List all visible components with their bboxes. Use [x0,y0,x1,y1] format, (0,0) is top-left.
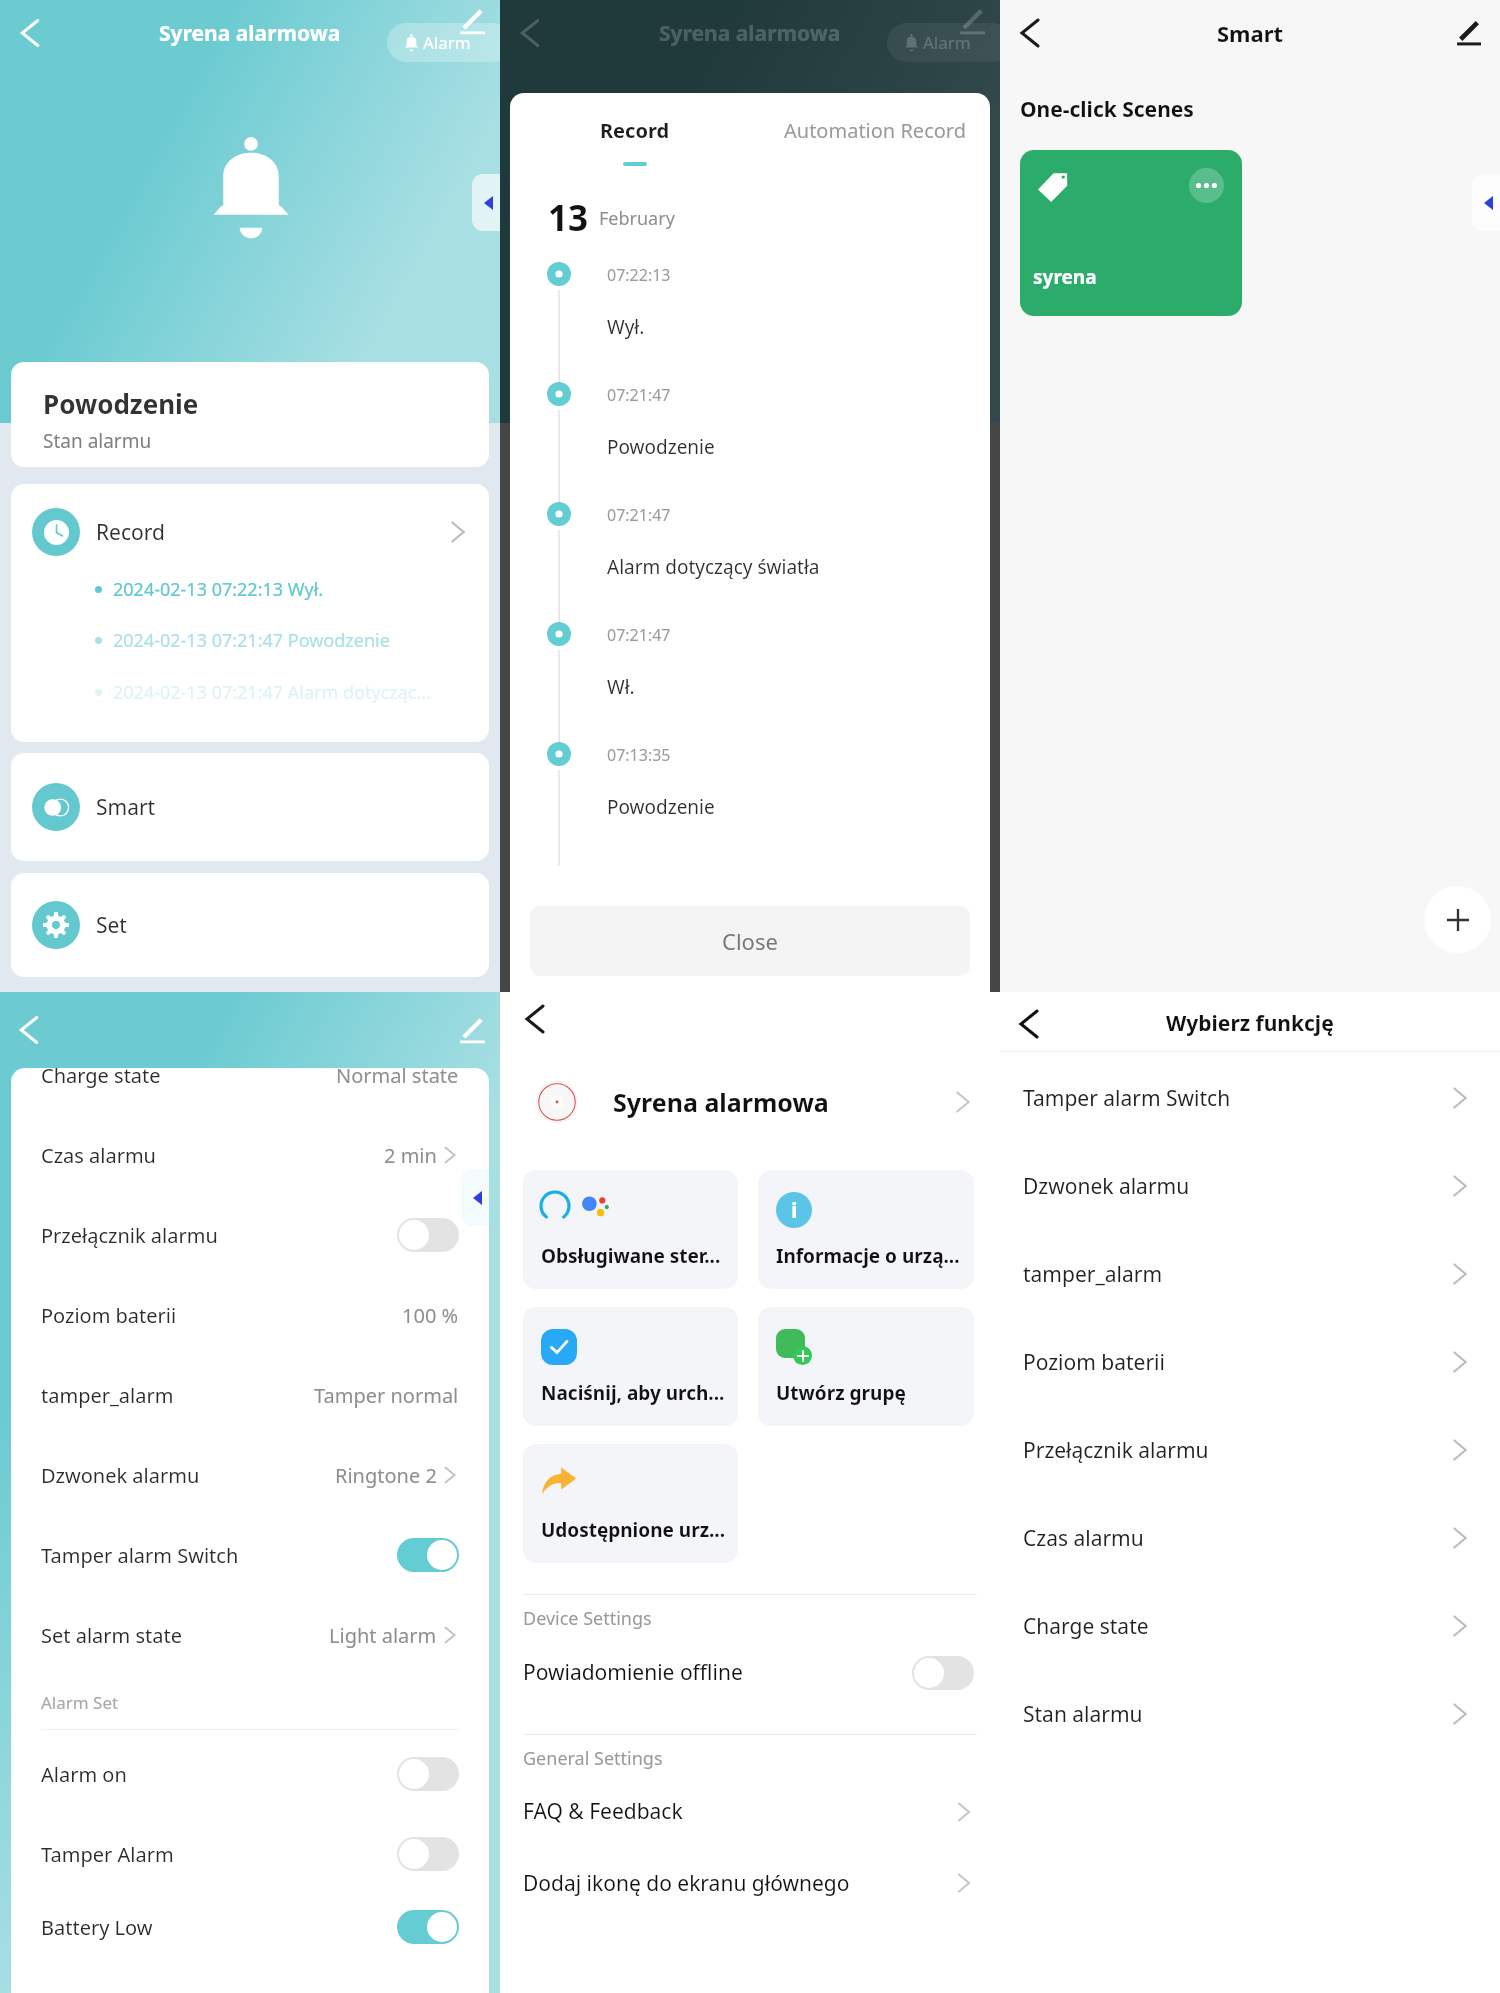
button[interactable]: Powiadomienie offline [500,1642,1000,1703]
staticText: 2024-02-13 07:21:47 Powodzenie [113,628,390,652]
button[interactable]: Edit [455,1014,487,1046]
staticText: Dzwonek alarmu [41,1462,200,1489]
staticText: Naciśnij, aby urch... [541,1380,725,1406]
button[interactable]: Przełącznik alarmu [41,1195,459,1275]
staticText: Smart [1217,18,1284,48]
button[interactable]: Back [517,1001,553,1037]
button[interactable]: Smart [11,753,489,861]
staticText: Ringtone 2 [335,1462,437,1489]
staticText: Normal state [336,1068,459,1089]
staticText: Alarm Set [41,1691,119,1714]
button[interactable]: Alarm [387,23,512,62]
button[interactable]: Utwórz grupę [758,1307,974,1426]
button[interactable]: Expand panel [472,174,500,231]
button[interactable]: Set alarm state [41,1595,459,1675]
button[interactable]: Tamper Alarm [41,1814,459,1894]
button[interactable]: Record [510,104,760,156]
button[interactable]: FAQ & Feedback [500,1781,1000,1842]
staticText: 07:13:35 [607,744,671,766]
button[interactable]: Dzwonek alarmu [1000,1142,1500,1230]
button[interactable]: i [758,1170,974,1289]
button[interactable]: Syrena alarmowa [500,1070,1000,1134]
button[interactable]: Set [11,873,489,977]
staticText: Set alarm state [41,1622,182,1649]
staticText: Close [722,926,778,956]
staticText: General Settings [523,1746,663,1771]
staticText: Set [96,911,127,940]
staticText: 2024-02-13 07:22:13 Wył. [113,577,324,601]
button[interactable]: Poziom baterii [41,1275,459,1355]
button[interactable]: Poziom baterii [1000,1318,1500,1406]
button[interactable]: Add scene [1424,886,1491,953]
staticText: Przełącznik alarmu [1023,1436,1209,1465]
staticText: 07:21:47 [607,384,671,406]
button[interactable]: Back [1011,1006,1047,1042]
button[interactable]: Back [1012,15,1048,51]
button[interactable]: Back [11,1012,47,1048]
staticText: Powodzenie [43,386,199,421]
staticText: Device Settings [523,1606,652,1631]
button[interactable]: More options [1020,150,1242,316]
button[interactable]: Alarm on [41,1734,459,1814]
button[interactable]: Naciśnij, aby urch... [523,1307,738,1426]
staticText: 07:22:13 [607,264,671,286]
button[interactable]: Czas alarmu [1000,1494,1500,1582]
staticText: FAQ & Feedback [523,1797,683,1826]
staticText: Poziom baterii [1023,1348,1165,1377]
staticText: Wł. [607,674,635,700]
button[interactable]: Czas alarmu [41,1115,459,1195]
button[interactable]: Edit [455,5,487,37]
button[interactable]: Obsługiwane ster... [523,1170,738,1289]
staticText: Tamper normal [314,1382,459,1409]
button[interactable]: Back [12,15,48,51]
button[interactable]: Charge state [41,1068,459,1115]
staticText: Alarm dotyczący światła [607,554,820,580]
button[interactable]: Automation Record [760,104,990,156]
button[interactable]: tamper_alarm [1000,1230,1500,1318]
staticText: Tamper Alarm [41,1841,174,1868]
staticText: Record [96,518,165,547]
staticText: Wybierz funkcję [1166,1009,1334,1038]
staticText: Dzwonek alarmu [1023,1172,1190,1201]
staticText: Dodaj ikonę do ekranu głównego [523,1869,850,1898]
button[interactable]: Dzwonek alarmu [41,1435,459,1515]
staticText: Stan alarmu [43,428,152,454]
staticText: tamper_alarm [41,1382,174,1409]
button[interactable]: Tamper alarm Switch [1000,1054,1500,1142]
staticText: Udostępnione urz... [541,1517,726,1543]
button[interactable]: Close [530,906,970,976]
staticText: Smart [96,793,156,822]
button[interactable]: Expand panel [1472,174,1500,231]
button[interactable]: More options [1189,168,1224,203]
button[interactable]: Dodaj ikonę do ekranu głównego [500,1842,1000,1924]
button[interactable]: tamper_alarm [41,1355,459,1435]
button[interactable]: Battery Low [41,1894,459,1960]
staticText: tamper_alarm [1023,1260,1163,1289]
staticText: Alarm on [41,1761,127,1788]
staticText: Czas alarmu [1023,1524,1144,1553]
button[interactable]: Przełącznik alarmu [1000,1406,1500,1494]
staticText: Powodzenie [607,434,715,460]
button[interactable]: Udostępnione urz... [523,1444,738,1563]
button[interactable]: Expand panel [461,1169,489,1226]
staticText: Record [600,117,670,144]
button[interactable]: Powodzenie [11,362,489,467]
staticText: Utwórz grupę [776,1380,906,1406]
staticText: Powodzenie [607,794,715,820]
staticText: Syrena alarmowa [613,1085,829,1119]
staticText: Tamper alarm Switch [41,1542,239,1569]
staticText: Charge state [1023,1612,1149,1641]
button[interactable]: Charge state [1000,1582,1500,1670]
button[interactable]: Stan alarmu [1000,1670,1500,1758]
staticText: Alarm [423,31,471,54]
staticText: Automation Record [784,117,966,144]
staticText: Syrena alarmowa [159,19,341,48]
staticText: Alarm [923,31,971,54]
staticText: Wył. [607,314,645,340]
staticText: syrena [1033,264,1097,290]
button[interactable]: Tamper alarm Switch [41,1515,459,1595]
button[interactable]: Record [11,484,489,742]
button[interactable]: Edit [1452,17,1484,49]
staticText: 13 [548,194,589,236]
staticText: 07:21:47 [607,504,671,526]
